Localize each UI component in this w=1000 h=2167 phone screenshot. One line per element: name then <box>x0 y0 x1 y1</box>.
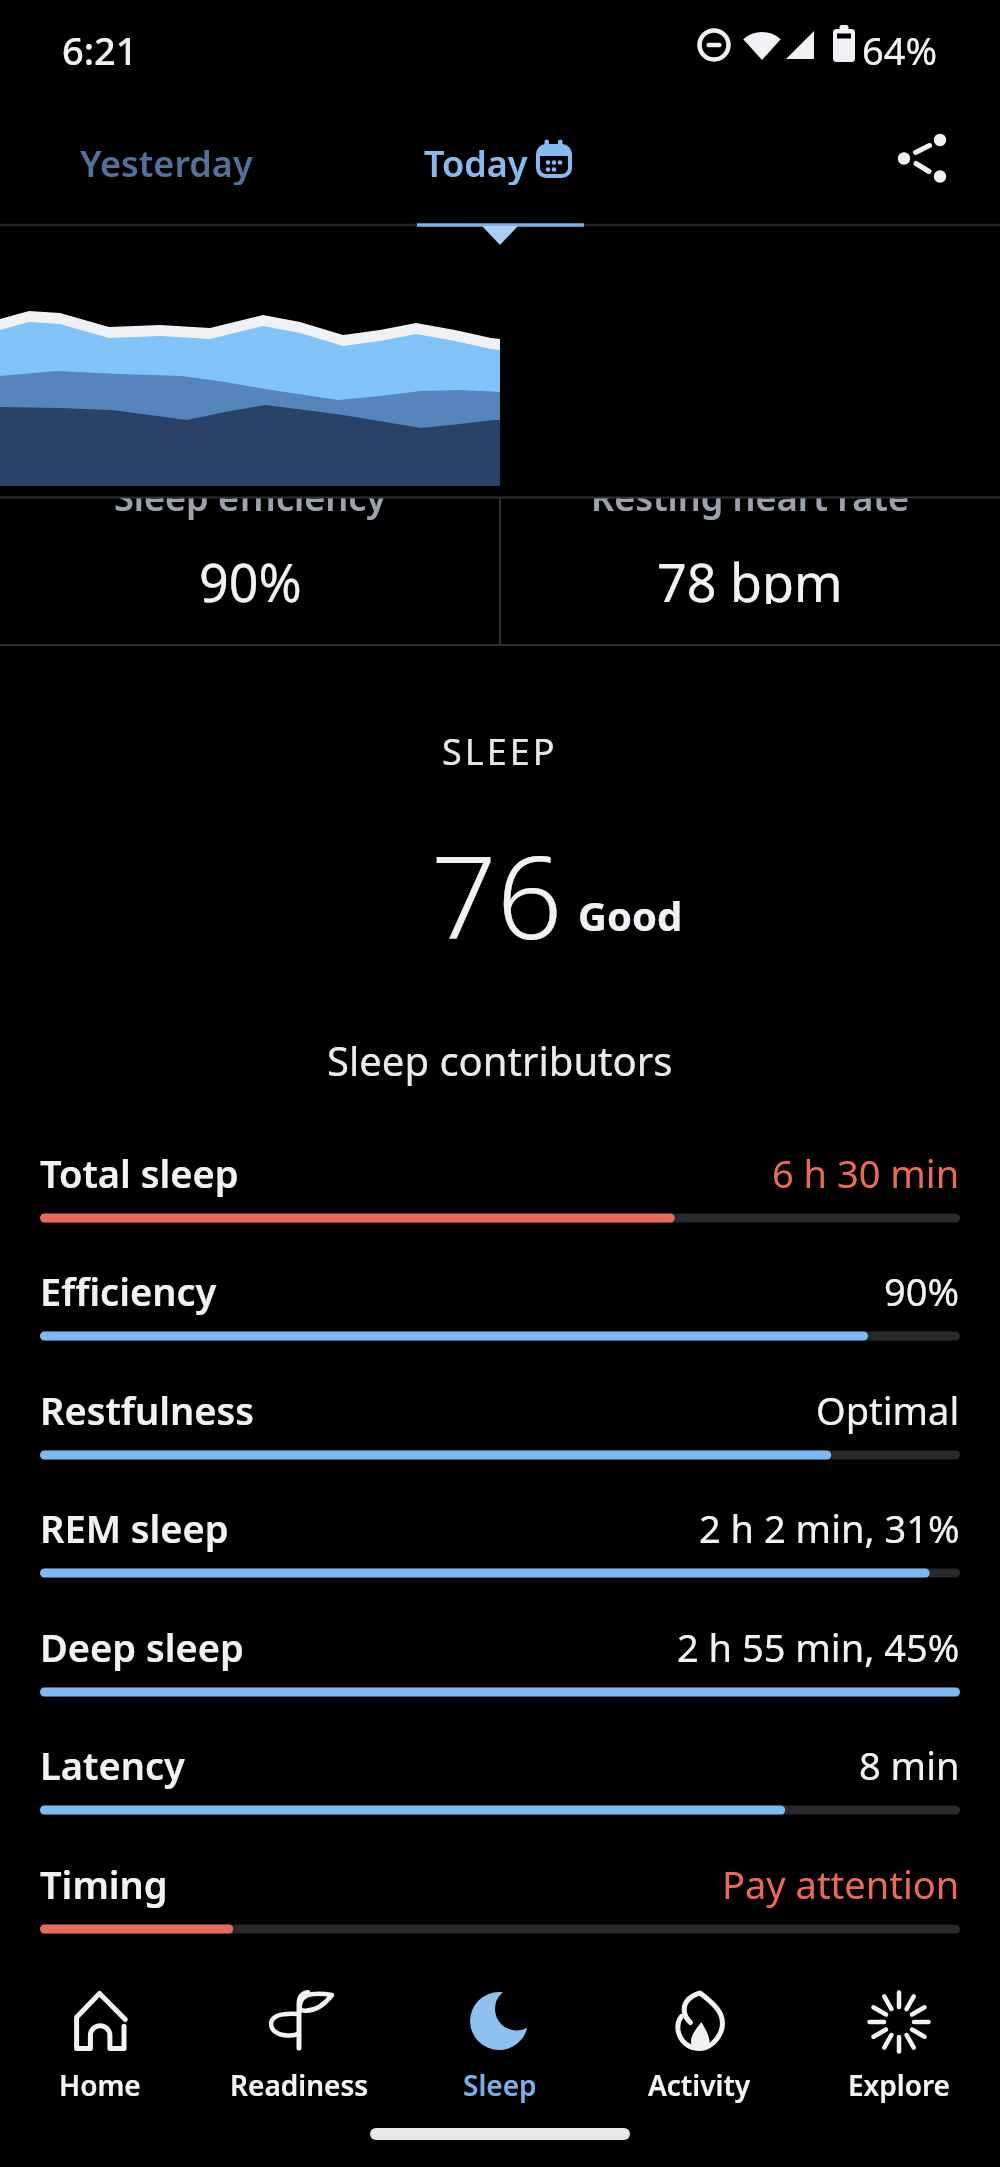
staticText: Pay attention <box>722 1858 960 1910</box>
staticText: 8 min <box>859 1739 960 1791</box>
staticText: Readiness <box>230 2066 369 2104</box>
staticText: Timing <box>40 1858 168 1910</box>
staticText: Deep sleep <box>40 1621 244 1673</box>
staticText: Activity <box>648 2066 751 2104</box>
staticText: 6 h 30 min <box>772 1147 960 1199</box>
staticText: Sleep contributors <box>327 1033 673 1087</box>
staticText: 90% <box>199 546 302 604</box>
staticText: Resting heart rate <box>591 473 909 522</box>
staticText: Good <box>578 888 683 938</box>
staticText: Sleep efficiency <box>114 473 387 522</box>
staticText: 64% <box>862 24 938 66</box>
staticText: Total sleep <box>40 1147 239 1199</box>
staticText: Latency <box>40 1739 185 1791</box>
staticText: 6:21 <box>62 24 138 66</box>
staticText: 2 h 55 min, 45% <box>677 1621 960 1673</box>
staticText: Efficiency <box>40 1265 217 1317</box>
staticText: 78 bpm <box>657 546 843 604</box>
staticText: SLEEP <box>442 727 558 776</box>
staticText: 90% <box>884 1265 960 1317</box>
staticText: REM sleep <box>40 1502 229 1554</box>
staticText: Optimal <box>816 1384 960 1436</box>
staticText: 2 h 2 min, 31% <box>699 1502 960 1554</box>
staticText: Sleep <box>463 2066 537 2104</box>
staticText: Home <box>59 2066 141 2104</box>
staticText: Yesterday <box>80 139 253 185</box>
staticText: Today <box>424 139 528 185</box>
staticText: 76 <box>431 816 563 958</box>
staticText: Explore <box>848 2066 951 2104</box>
staticText: Restfulness <box>40 1384 254 1436</box>
